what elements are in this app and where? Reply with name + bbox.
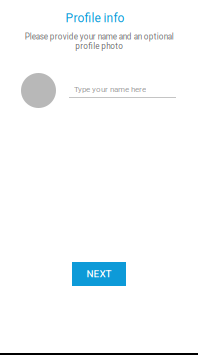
button[interactable]: Choose profile photo [21, 73, 56, 108]
button[interactable]: NEXT [72, 262, 126, 286]
staticText: Profile info [65, 11, 124, 25]
staticText: Type your name here [74, 85, 146, 94]
staticText: Please provide your name and an optional… [24, 32, 173, 51]
button[interactable]: Type your name here [69, 74, 176, 98]
staticText: NEXT [86, 268, 111, 280]
